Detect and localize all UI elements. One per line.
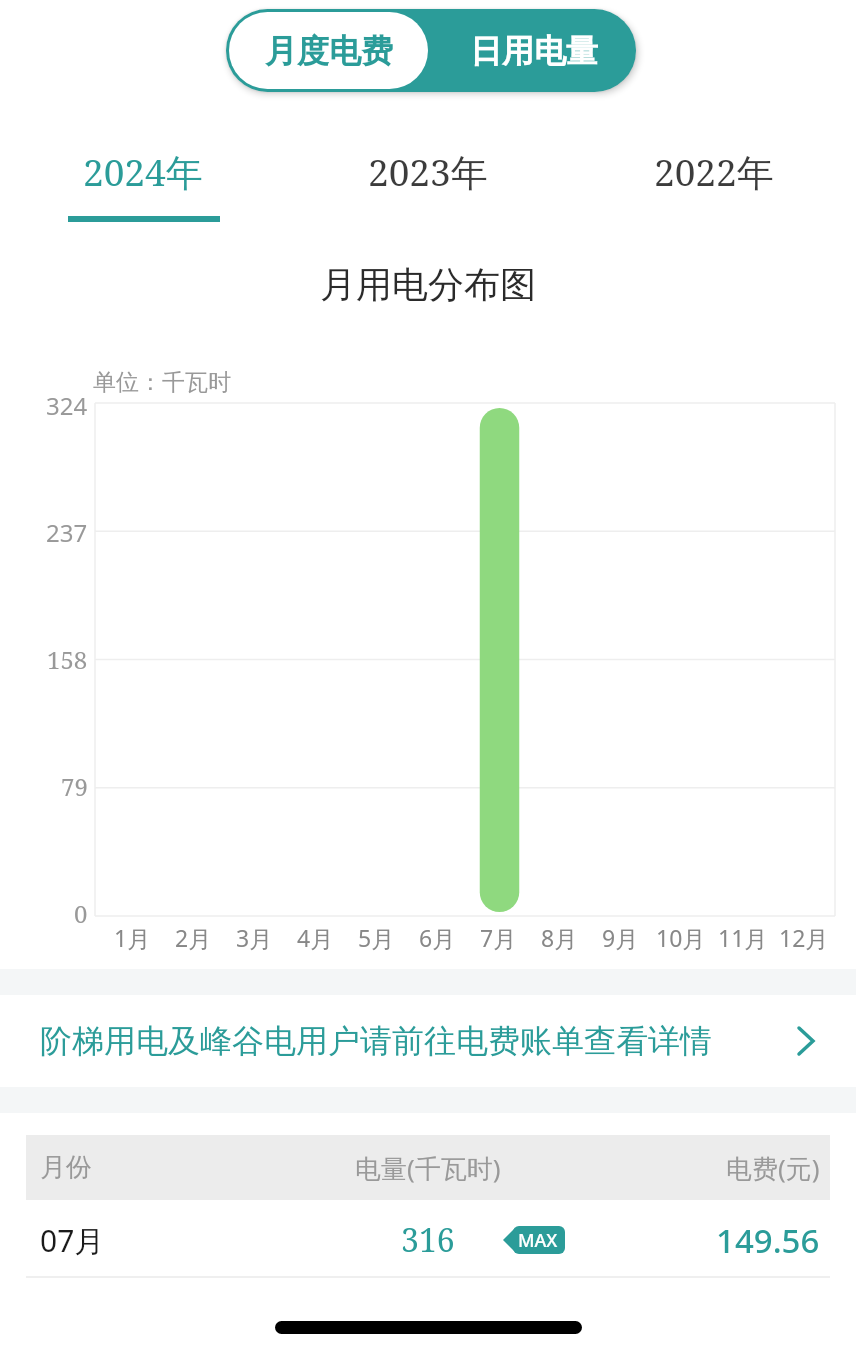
staticText: 316: [401, 1218, 455, 1262]
staticText: MAX: [518, 1228, 558, 1253]
staticText: 月度电费: [265, 31, 393, 71]
staticText: 8月: [541, 922, 578, 953]
staticText: 237: [46, 516, 88, 549]
staticText: 7月: [480, 922, 517, 953]
staticText: 月用电分布图: [320, 262, 536, 307]
button[interactable]: 07月: [0, 1200, 856, 1280]
staticText: 1月: [114, 922, 151, 953]
button[interactable]: 2024年: [0, 140, 285, 202]
staticText: 2月: [175, 922, 212, 953]
staticText: 07月: [40, 1220, 105, 1261]
staticText: 158: [47, 643, 88, 676]
staticText: 电费(元): [726, 1150, 820, 1186]
staticText: 月份: [40, 1151, 92, 1184]
staticText: 11月: [718, 922, 768, 953]
staticText: 2024年: [83, 146, 203, 197]
button[interactable]: 阶梯用电及峰谷电用户请前往电费账单查看详情: [0, 995, 856, 1087]
staticText: 单位：千瓦时: [93, 368, 231, 397]
staticText: 12月: [779, 922, 829, 953]
button[interactable]: 2023年: [285, 140, 571, 202]
button[interactable]: 2022年: [571, 140, 856, 202]
staticText: 阶梯用电及峰谷电用户请前往电费账单查看详情: [40, 1021, 712, 1061]
staticText: 5月: [358, 922, 395, 953]
button[interactable]: 日用电量: [431, 9, 636, 92]
staticText: 79: [61, 770, 88, 803]
staticText: 6月: [419, 922, 456, 953]
staticText: 0: [74, 897, 88, 930]
staticText: 日用电量: [470, 31, 598, 71]
staticText: 149.56: [716, 1218, 820, 1263]
staticText: 电量(千瓦时): [355, 1150, 501, 1186]
staticText: 10月: [656, 922, 706, 953]
staticText: 324: [46, 389, 88, 422]
staticText: 2022年: [654, 146, 774, 197]
staticText: 2023年: [368, 146, 488, 197]
staticText: 4月: [297, 922, 334, 953]
staticText: 3月: [236, 922, 273, 953]
staticText: 9月: [602, 922, 639, 953]
button[interactable]: 月度电费: [229, 12, 428, 89]
